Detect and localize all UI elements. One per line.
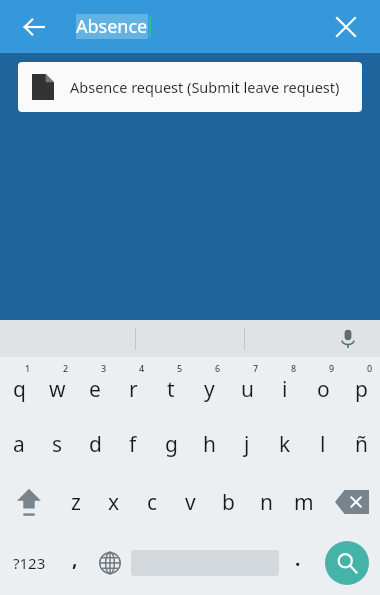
button[interactable]: 5 <box>152 357 190 415</box>
staticText: , <box>72 546 78 572</box>
button[interactable]: k <box>266 415 304 473</box>
button[interactable]: Shift <box>0 473 57 531</box>
button[interactable]: 0 <box>342 357 380 415</box>
button[interactable]: Search <box>325 541 369 585</box>
staticText: f <box>129 430 137 459</box>
staticText: 0 <box>367 362 373 374</box>
staticText: v <box>185 488 196 517</box>
staticText: w <box>49 375 66 404</box>
button[interactable]: Back <box>12 5 56 49</box>
staticText: k <box>279 430 291 459</box>
staticText: ?123 <box>13 553 46 573</box>
staticText: o <box>317 375 330 404</box>
staticText: n <box>260 488 273 517</box>
staticText: b <box>222 488 235 517</box>
staticText: s <box>52 430 63 459</box>
button[interactable]: 1 <box>0 357 38 415</box>
staticText: 1 <box>25 362 31 374</box>
staticText: h <box>203 430 216 459</box>
staticText: q <box>13 375 26 404</box>
staticText: c <box>147 488 158 517</box>
staticText: d <box>89 430 102 459</box>
staticText: u <box>241 375 254 404</box>
staticText: y <box>204 375 215 404</box>
button[interactable]: ñ <box>342 415 380 473</box>
staticText: g <box>165 430 178 459</box>
staticText: 8 <box>291 362 297 374</box>
button[interactable]: . <box>281 531 314 595</box>
button[interactable]: b <box>209 473 247 531</box>
button[interactable]: , <box>58 531 91 595</box>
button[interactable]: 4 <box>114 357 152 415</box>
staticText: . <box>295 546 301 572</box>
staticText: Absence request (Submit leave request) <box>70 77 340 97</box>
button[interactable]: f <box>114 415 152 473</box>
button[interactable]: Voice input <box>330 321 366 357</box>
staticText: ñ <box>355 430 368 459</box>
button[interactable]: 7 <box>228 357 266 415</box>
button[interactable]: m <box>285 473 323 531</box>
staticText: 4 <box>139 362 145 374</box>
button[interactable]: 9 <box>304 357 342 415</box>
staticText: m <box>294 488 314 517</box>
staticText: r <box>129 375 138 404</box>
button[interactable]: j <box>228 415 266 473</box>
button[interactable]: a <box>0 415 38 473</box>
button[interactable]: 8 <box>266 357 304 415</box>
button[interactable] <box>128 531 281 595</box>
button[interactable]: Clear search <box>324 5 368 49</box>
staticText: 9 <box>329 362 335 374</box>
staticText: e <box>89 375 101 404</box>
staticText: j <box>244 430 250 459</box>
staticText: p <box>355 375 368 404</box>
staticText: z <box>71 488 81 517</box>
button[interactable]: 3 <box>76 357 114 415</box>
staticText: 3 <box>101 362 107 374</box>
button[interactable]: d <box>76 415 114 473</box>
staticText: 2 <box>63 362 69 374</box>
button[interactable]: g <box>152 415 190 473</box>
staticText: 5 <box>177 362 183 374</box>
button[interactable]: n <box>247 473 285 531</box>
button[interactable]: z <box>57 473 95 531</box>
staticText: x <box>108 488 120 517</box>
staticText: a <box>13 430 25 459</box>
button[interactable]: l <box>304 415 342 473</box>
button[interactable]: Backspace <box>323 473 380 531</box>
staticText: 6 <box>215 362 221 374</box>
button[interactable]: c <box>133 473 171 531</box>
button[interactable]: h <box>190 415 228 473</box>
button[interactable]: 6 <box>190 357 228 415</box>
staticText: Absence <box>76 14 148 39</box>
staticText: 7 <box>253 362 259 374</box>
button[interactable]: Change language <box>91 531 128 595</box>
staticText: l <box>320 430 326 459</box>
staticText: t <box>167 375 175 404</box>
button[interactable]: v <box>171 473 209 531</box>
button[interactable]: x <box>95 473 133 531</box>
staticText: i <box>282 375 288 404</box>
button[interactable]: Absence request (Submit leave request) <box>18 62 362 112</box>
button[interactable]: ?123 <box>0 531 58 595</box>
button[interactable]: s <box>38 415 76 473</box>
button[interactable]: 2 <box>38 357 76 415</box>
